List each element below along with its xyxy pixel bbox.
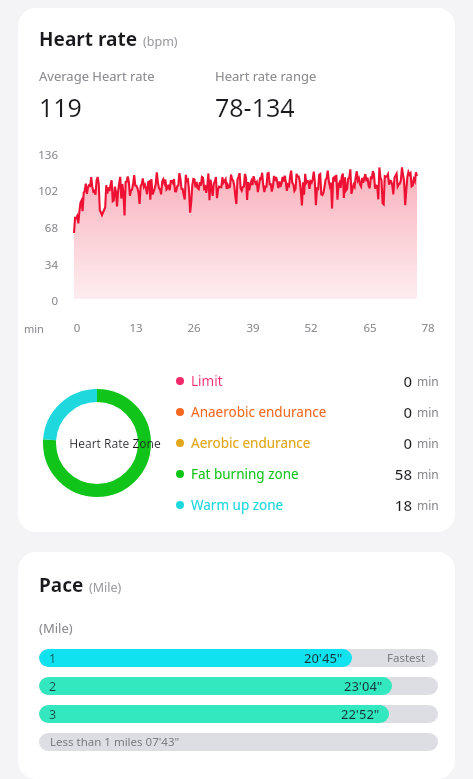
button[interactable]: Aerobic endurance (176, 427, 439, 458)
staticText: 0 (18, 293, 58, 309)
staticText: 65 (357, 320, 383, 336)
staticText: 68 (18, 220, 58, 236)
staticText: 78-134 (215, 90, 295, 124)
staticText: min (417, 435, 439, 451)
button[interactable]: Less than 1 miles 07'43" (39, 733, 438, 751)
staticText: (Mile) (39, 619, 73, 637)
staticText: 39 (240, 320, 266, 336)
staticText: 20'45" (304, 649, 343, 667)
button[interactable]: Warm up zone (176, 489, 439, 520)
staticText: 136 (18, 147, 58, 163)
staticText: 102 (18, 183, 58, 199)
staticText: Heart Rate Zone (69, 435, 161, 451)
staticText: min (24, 321, 52, 336)
staticText: 2 (49, 678, 57, 695)
staticText: 119 (39, 90, 82, 124)
staticText: 0 (388, 402, 412, 422)
staticText: Average Heart rate (39, 67, 155, 85)
staticText: Warm up zone (191, 496, 388, 514)
button[interactable]: 3 (39, 705, 438, 723)
staticText: 52 (298, 320, 324, 336)
staticText: 22'52" (341, 705, 380, 723)
staticText: min (417, 404, 439, 420)
staticText: 18 (388, 495, 412, 515)
button[interactable]: Fat burning zone (176, 458, 439, 489)
staticText: 0 (388, 433, 412, 453)
staticText: Less than 1 miles 07'43" (50, 734, 180, 750)
staticText: (bpm) (143, 33, 178, 50)
staticText: Fastest (387, 650, 426, 666)
staticText: (Mile) (89, 579, 122, 596)
staticText: 78 (415, 320, 441, 336)
button[interactable]: Anaerobic endurance (176, 396, 439, 427)
staticText: 0 (388, 371, 412, 391)
staticText: Heart rate (39, 26, 138, 52)
staticText: Pace (39, 572, 84, 598)
button[interactable]: 2 (39, 677, 438, 695)
staticText: 0 (64, 320, 90, 336)
staticText: 3 (49, 706, 57, 723)
staticText: 34 (18, 257, 58, 273)
button[interactable]: 1 (39, 649, 438, 667)
staticText: min (417, 373, 439, 389)
staticText: min (417, 466, 439, 482)
staticText: 13 (123, 320, 149, 336)
staticText: 23'04" (344, 677, 383, 695)
staticText: min (417, 497, 439, 513)
staticText: 58 (388, 464, 412, 484)
staticText: 26 (181, 320, 207, 336)
staticText: Limit (191, 372, 388, 390)
staticText: Anaerobic endurance (191, 403, 388, 421)
staticText: 1 (49, 650, 57, 667)
staticText: Heart rate range (215, 67, 317, 85)
button[interactable]: Limit (176, 365, 439, 396)
staticText: Aerobic endurance (191, 434, 388, 452)
staticText: Fat burning zone (191, 465, 388, 483)
